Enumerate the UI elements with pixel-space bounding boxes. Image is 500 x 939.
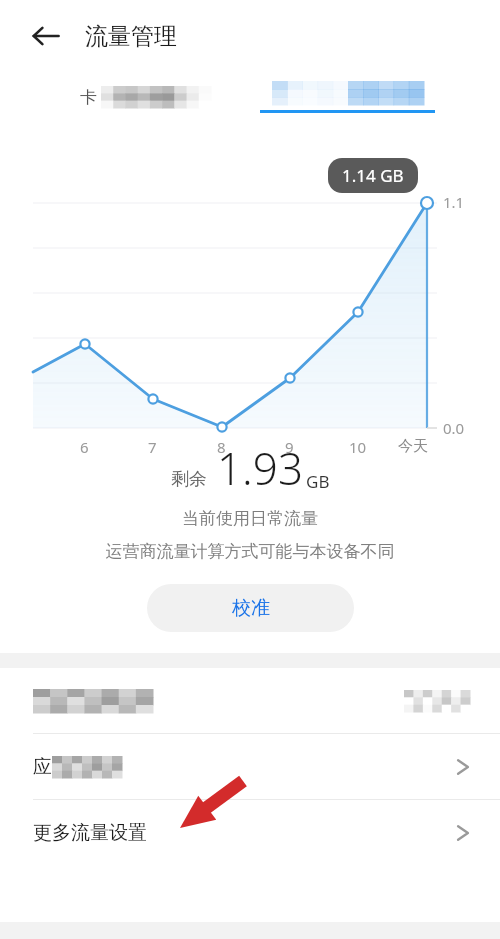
- staticText: 0.0: [443, 418, 465, 438]
- button[interactable]: 流量套餐: [0, 668, 500, 733]
- staticText: 应: [33, 755, 52, 779]
- staticText: 更多流量设置: [33, 821, 147, 845]
- staticText: 9: [285, 437, 294, 457]
- staticText: 运营商流量计算方式可能与本设备不同: [0, 541, 500, 562]
- button[interactable]: 更多流量设置: [0, 800, 500, 865]
- button[interactable]: 应用流量管理: [0, 734, 500, 799]
- staticText: 10: [349, 437, 367, 457]
- staticText: 校准: [232, 596, 270, 620]
- staticText: 卡: [80, 87, 97, 108]
- staticText: 1.1: [443, 192, 465, 212]
- staticText: 今天: [398, 437, 428, 456]
- staticText: 1.93: [217, 438, 304, 498]
- staticText: 7: [148, 437, 157, 457]
- button[interactable]: [260, 81, 435, 113]
- staticText: 当前使用日常流量: [0, 508, 500, 529]
- button[interactable]: 卡: [80, 75, 211, 119]
- button[interactable]: Back: [18, 8, 74, 64]
- staticText: 流量管理: [85, 22, 177, 51]
- staticText: GB: [306, 470, 330, 493]
- staticText: 8: [217, 437, 226, 457]
- button[interactable]: 校准: [147, 584, 354, 632]
- staticText: 1.14 GB: [342, 164, 404, 187]
- staticText: 6: [80, 437, 89, 457]
- staticText: 剩余: [171, 468, 207, 491]
